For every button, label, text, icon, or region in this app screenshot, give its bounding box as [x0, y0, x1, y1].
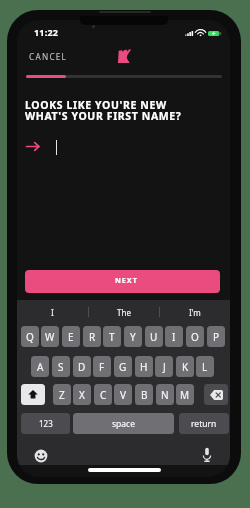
button[interactable]: K: [176, 356, 194, 377]
staticText: space: [112, 418, 135, 430]
staticText: V: [120, 388, 126, 402]
staticText: Q: [26, 330, 34, 344]
staticText: J: [163, 360, 166, 374]
staticText: I: [172, 330, 176, 344]
button[interactable]: Shift: [21, 384, 45, 405]
staticText: 11:22: [34, 26, 59, 38]
button[interactable]: X: [73, 384, 91, 405]
staticText: P: [213, 330, 220, 344]
staticText: G: [119, 360, 127, 374]
staticText: Y: [130, 330, 136, 344]
staticText: F: [99, 360, 105, 374]
staticText: D: [78, 360, 86, 374]
button[interactable]: U: [145, 326, 163, 347]
staticText: NEXT: [115, 275, 138, 285]
button[interactable]: Q: [21, 326, 39, 347]
button[interactable]: J: [155, 356, 173, 377]
staticText: B: [141, 388, 148, 402]
button[interactable]: return: [179, 413, 229, 434]
staticText: CANCEL: [29, 51, 68, 62]
button[interactable]: G: [114, 356, 132, 377]
button[interactable]: CANCEL: [21, 46, 75, 66]
button[interactable]: The: [88, 303, 159, 321]
button[interactable]: I: [165, 326, 183, 347]
button[interactable]: T: [103, 326, 121, 347]
button[interactable]: Backspace: [204, 384, 228, 405]
button[interactable]: F: [93, 356, 111, 377]
staticText: S: [58, 360, 64, 374]
button[interactable]: Z: [53, 384, 71, 405]
button[interactable]: D: [73, 356, 91, 377]
staticText: N: [161, 388, 169, 402]
button[interactable]: 123: [21, 413, 70, 434]
staticText: L: [202, 360, 208, 374]
staticText: A: [37, 360, 44, 374]
button[interactable]: I'm: [159, 303, 230, 321]
button[interactable]: A: [31, 356, 49, 377]
button[interactable]: S: [52, 356, 70, 377]
staticText: H: [140, 360, 148, 374]
staticText: LOOKS LIKE YOU'RE NEW: [25, 98, 167, 112]
staticText: The: [117, 307, 131, 318]
button[interactable]: H: [135, 356, 153, 377]
staticText: Z: [59, 388, 65, 402]
button[interactable]: Dictation: [202, 447, 212, 462]
staticText: WHAT'S YOUR FIRST NAME?: [25, 109, 182, 123]
button[interactable]: V: [114, 384, 132, 405]
button[interactable]: P: [207, 326, 225, 347]
staticText: K: [182, 360, 189, 374]
button[interactable]: Emoji keyboard: [34, 449, 48, 463]
button[interactable]: C: [94, 384, 112, 405]
staticText: return: [191, 418, 217, 430]
button[interactable]: L: [196, 356, 214, 377]
staticText: 123: [39, 418, 53, 429]
button[interactable]: B: [135, 384, 153, 405]
staticText: R: [89, 330, 96, 344]
staticText: I'm: [189, 307, 201, 318]
button[interactable]: N: [156, 384, 174, 405]
staticText: I: [51, 307, 54, 318]
staticText: T: [109, 330, 115, 344]
staticText: C: [100, 388, 107, 402]
staticText: W: [45, 330, 55, 344]
button[interactable]: R: [83, 326, 101, 347]
staticText: U: [150, 330, 158, 344]
staticText: X: [79, 388, 85, 402]
staticText: O: [191, 330, 199, 344]
staticText: E: [68, 330, 74, 344]
button[interactable]: W: [41, 326, 59, 347]
button[interactable]: I: [17, 303, 88, 321]
button[interactable]: Y: [124, 326, 142, 347]
button[interactable]: O: [186, 326, 204, 347]
button[interactable]: E: [62, 326, 80, 347]
button[interactable]: space: [73, 413, 174, 434]
staticText: M: [180, 388, 190, 402]
button[interactable]: M: [176, 384, 194, 405]
button[interactable]: NEXT: [25, 270, 220, 293]
